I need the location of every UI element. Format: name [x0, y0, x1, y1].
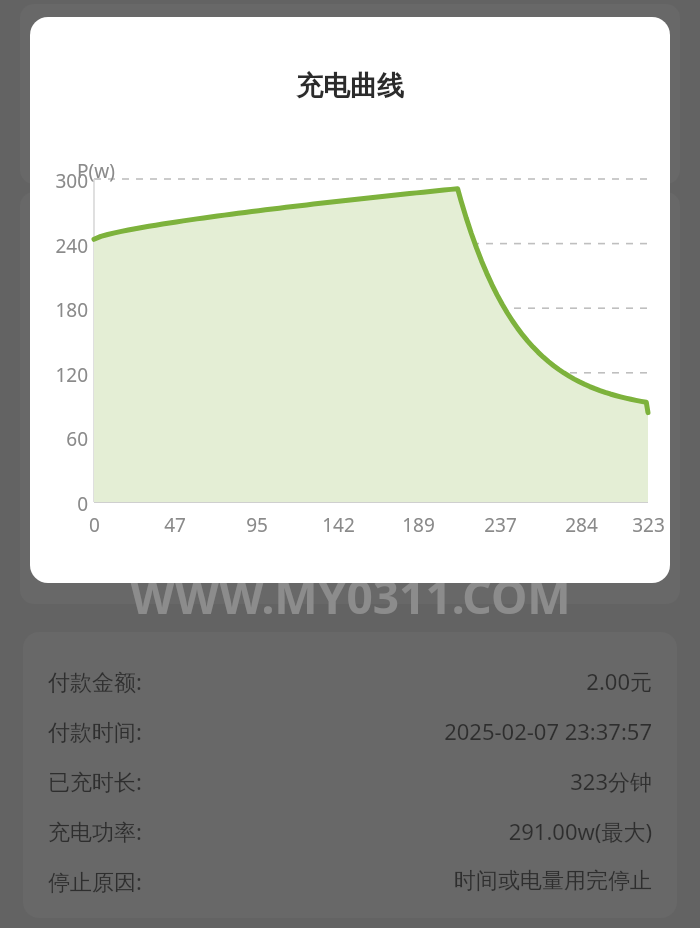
staticText: 237 — [484, 512, 517, 538]
button[interactable]: 付款时间: — [23, 706, 677, 756]
staticText: 142 — [322, 512, 355, 538]
staticText: 95 — [246, 512, 268, 538]
staticText: 180 — [55, 297, 88, 323]
staticText: 时间或电量用完停止 — [454, 867, 652, 895]
staticText: 189 — [402, 512, 435, 538]
button[interactable]: 停止原因: — [23, 856, 677, 906]
staticText: 291.00w(最大) — [508, 816, 652, 846]
staticText: 付款金额: — [48, 666, 142, 696]
button[interactable]: 充电曲线 — [30, 17, 670, 583]
staticText: 2.00元 — [586, 666, 652, 696]
button[interactable]: 付款金额: — [23, 656, 677, 706]
staticText: 300 — [55, 168, 88, 194]
staticText: 284 — [565, 512, 598, 538]
staticText: 停止原因: — [48, 866, 142, 896]
staticText: 充电曲线 — [30, 69, 670, 103]
button[interactable]: 已充时长: — [23, 756, 677, 806]
staticText: 付款时间: — [48, 716, 142, 746]
staticText: P(w) — [77, 158, 115, 184]
staticText: 60 — [66, 426, 88, 452]
staticText: 323分钟 — [570, 766, 652, 796]
staticText: 已充时长: — [48, 766, 142, 796]
staticText: 240 — [55, 233, 88, 259]
staticText: 47 — [164, 512, 186, 538]
staticText: 充电功率: — [48, 816, 142, 846]
staticText: 120 — [55, 362, 88, 388]
staticText: 0 — [77, 491, 88, 517]
staticText: 2025-02-07 23:37:57 — [444, 716, 652, 746]
staticText: 323 — [632, 512, 665, 538]
button[interactable]: 充电功率: — [23, 806, 677, 856]
staticText: WWW.MY0311.COM — [130, 565, 571, 628]
staticText: 0 — [89, 512, 100, 538]
